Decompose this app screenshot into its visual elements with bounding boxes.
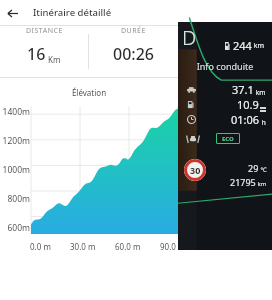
staticText: 00:26 (113, 43, 154, 65)
staticText: km (252, 41, 265, 51)
button[interactable]: DISTANCE (0, 26, 88, 65)
button[interactable]: DURÉE (89, 26, 178, 65)
staticText: 21795 (230, 176, 256, 188)
staticText: 800m (0, 193, 30, 205)
staticText: 90.0 (160, 241, 176, 252)
staticText: 1000m (0, 164, 30, 176)
staticText: ECO (222, 135, 234, 143)
staticText: 1200m (0, 135, 30, 147)
staticText: DURÉE (121, 26, 146, 36)
staticText: 600m (0, 222, 30, 234)
staticText: km (254, 88, 266, 97)
staticText: Km (46, 54, 61, 65)
staticText: 1400m (0, 106, 30, 118)
staticText: Itinéraire détaillé (33, 6, 112, 19)
button[interactable]: Back (0, 1, 24, 25)
staticText: 37.1 (232, 82, 254, 97)
staticText: 30 (190, 164, 201, 176)
staticText: 01:06 (231, 112, 260, 127)
staticText: 60.0 m (115, 241, 141, 252)
staticText: 16 (27, 43, 46, 65)
staticText: 0.0 m (30, 241, 51, 252)
staticText: 29 (248, 162, 259, 174)
staticText: h (260, 118, 266, 127)
staticText: 10.9 (237, 97, 259, 112)
staticText: Élévation (0, 87, 178, 98)
staticText: km (256, 180, 267, 188)
staticText: Info conduite (178, 60, 272, 72)
staticText: 244 (233, 38, 252, 53)
staticText: DISTANCE (26, 26, 63, 36)
staticText: 30.0 m (70, 241, 96, 252)
staticText: ℃ (259, 166, 267, 174)
staticText: D (182, 24, 197, 51)
